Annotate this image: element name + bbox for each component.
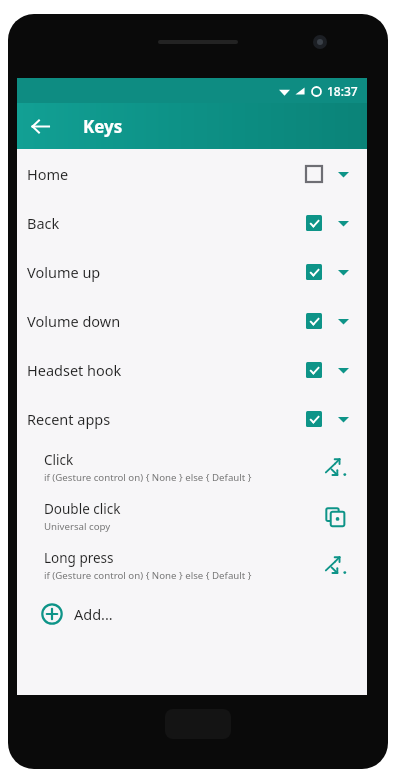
staticText: Back <box>27 213 299 233</box>
button[interactable]: Click <box>17 443 367 492</box>
staticText: if (Gesture control on) { None } else { … <box>44 471 252 484</box>
button[interactable]: Enabled <box>299 306 329 336</box>
button[interactable]: Recent apps <box>17 394 367 443</box>
button[interactable]: Expand Back <box>329 209 357 237</box>
staticText: Long press <box>44 549 114 567</box>
button[interactable]: Home <box>17 149 367 198</box>
button[interactable]: Add... <box>17 590 367 638</box>
button[interactable]: Headset hook <box>17 345 367 394</box>
button[interactable]: Expand Headset hook <box>329 356 357 384</box>
staticText: Recent apps <box>27 409 299 429</box>
button[interactable]: Action branch <box>319 451 353 485</box>
button[interactable]: Enabled <box>299 257 329 287</box>
button[interactable]: Double click <box>17 492 367 541</box>
button[interactable]: Enabled <box>299 404 329 434</box>
staticText: if (Gesture control on) { None } else { … <box>44 569 252 582</box>
button[interactable]: Expand Volume up <box>329 258 357 286</box>
staticText: Add... <box>74 604 113 624</box>
button[interactable]: Action branch <box>319 549 353 583</box>
staticText: Headset hook <box>27 360 299 380</box>
staticText: Universal copy <box>44 520 111 533</box>
staticText: 18:37 <box>327 83 358 99</box>
staticText: Volume down <box>27 311 299 331</box>
button[interactable]: Expand Volume down <box>329 307 357 335</box>
staticText: Home <box>27 164 299 184</box>
staticText: Volume up <box>27 262 299 282</box>
staticText: Double click <box>44 500 121 518</box>
staticText: Click <box>44 451 74 469</box>
button[interactable]: Expand Recent apps <box>329 405 357 433</box>
button[interactable]: Enabled <box>299 355 329 385</box>
button[interactable]: Enabled <box>299 208 329 238</box>
button[interactable]: Back <box>17 198 367 247</box>
staticText: Keys <box>83 115 123 138</box>
button[interactable]: Universal copy <box>319 500 353 534</box>
button[interactable]: Long press <box>17 541 367 590</box>
button[interactable]: Expand Home <box>329 160 357 188</box>
button[interactable]: Volume up <box>17 247 367 296</box>
button[interactable]: Volume down <box>17 296 367 345</box>
button[interactable]: Back <box>17 103 63 149</box>
button[interactable]: Disabled <box>299 159 329 189</box>
